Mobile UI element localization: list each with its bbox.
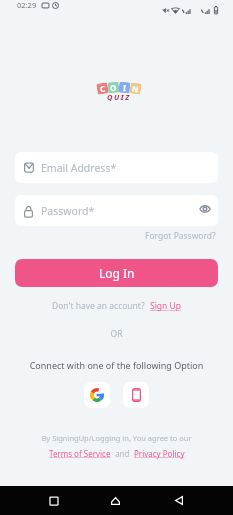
staticText: QUIZ — [107, 92, 131, 102]
button[interactable]: Show password — [198, 202, 212, 216]
staticText: Privacy Policy — [134, 448, 185, 459]
staticText: and — [111, 448, 134, 459]
staticText: Password* — [41, 204, 95, 218]
button[interactable]: Log In — [15, 259, 218, 287]
button[interactable]: Sign in with Google — [84, 382, 110, 408]
staticText: Email Address* — [41, 161, 117, 175]
button[interactable]: Email Address* — [15, 152, 218, 183]
staticText: I — [123, 82, 127, 93]
staticText: N — [131, 82, 140, 94]
button[interactable]: Terms of Service — [49, 448, 111, 459]
staticText: Don't have an account? — [52, 300, 145, 312]
button[interactable]: Forgot Password? — [143, 228, 218, 244]
staticText: Log In — [99, 265, 135, 281]
button[interactable]: Back — [166, 486, 192, 515]
staticText: Sign Up — [150, 300, 181, 312]
staticText: Connect with one of the following Option — [0, 359, 233, 371]
staticText: C — [99, 82, 107, 94]
staticText: 02:29 — [17, 0, 37, 10]
button[interactable]: Privacy Policy — [134, 448, 185, 459]
staticText: Forgot Password? — [145, 230, 216, 242]
button[interactable]: Sign Up — [150, 300, 181, 312]
button[interactable]: Sign in with phone number — [123, 382, 149, 408]
staticText: OR — [0, 328, 233, 340]
staticText: O — [110, 82, 117, 93]
staticText: By SigningUp/Logging in, You agree to ou… — [41, 433, 192, 443]
button[interactable]: Home — [102, 486, 128, 515]
button[interactable]: Password* — [15, 195, 218, 226]
button[interactable]: Recents — [41, 486, 67, 515]
staticText: Terms of Service — [49, 448, 111, 459]
